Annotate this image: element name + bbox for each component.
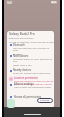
staticText: scan for Bluetooth devices nearby (14, 82, 52, 85)
staticText: Android requires location access to (14, 79, 54, 82)
staticText: Bluetooth (13, 43, 25, 46)
staticText: Continue (40, 99, 50, 102)
staticText: Location permission (14, 76, 39, 79)
staticText: Forwards alerts to your earbuds so you (13, 57, 54, 63)
staticText: ●●▮ (51, 1, 57, 4)
staticText: Scans for accessories around you (13, 71, 51, 74)
button[interactable]: Continue (37, 98, 53, 103)
button[interactable]: Skip (7, 99, 15, 108)
staticText: never miss a call (13, 63, 32, 66)
staticText: earbuds (13, 52, 23, 55)
staticText: Galaxy Buds2 Pro (9, 32, 35, 36)
staticText: Nearby devices (13, 68, 32, 71)
staticText: 9:41 (7, 1, 13, 5)
staticText: Lets the app pair and connect to your (13, 46, 54, 52)
staticText: Allow in settings (14, 82, 34, 85)
staticText: To use all features, allow the app acces… (9, 40, 58, 43)
staticText: Notifications (13, 54, 29, 57)
staticText: Review all permissions (14, 95, 41, 98)
staticText: Tap to open the permission page (14, 85, 51, 88)
staticText: Required permissions (9, 36, 34, 39)
